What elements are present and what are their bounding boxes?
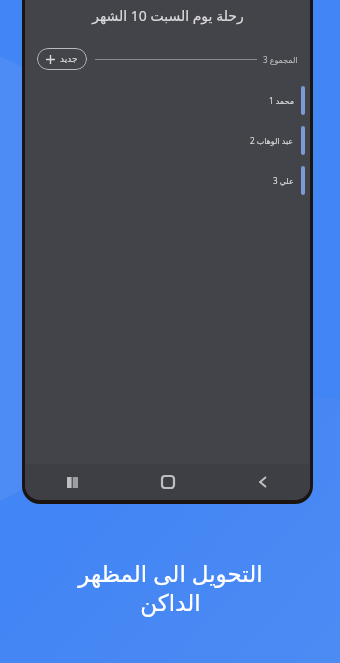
- button[interactable]: Recent apps: [25, 464, 120, 500]
- staticText: رحلة يوم السبت 10 الشهر: [92, 6, 244, 25]
- button[interactable]: عبد الوهاب 2: [25, 120, 310, 160]
- staticText: محمد 1: [269, 95, 294, 106]
- staticText: الداكن: [140, 590, 201, 617]
- staticText: المجموع 3: [263, 54, 298, 65]
- staticText: علي 3: [273, 175, 294, 186]
- button[interactable]: جديد: [37, 48, 87, 70]
- button[interactable]: محمد 1: [25, 80, 310, 120]
- button[interactable]: Back: [215, 464, 310, 500]
- staticText: جديد: [60, 54, 78, 64]
- staticText: التحويل الى المظهر: [78, 557, 263, 588]
- button[interactable]: Home: [120, 464, 215, 500]
- button[interactable]: علي 3: [25, 160, 310, 200]
- staticText: عبد الوهاب 2: [250, 135, 294, 146]
